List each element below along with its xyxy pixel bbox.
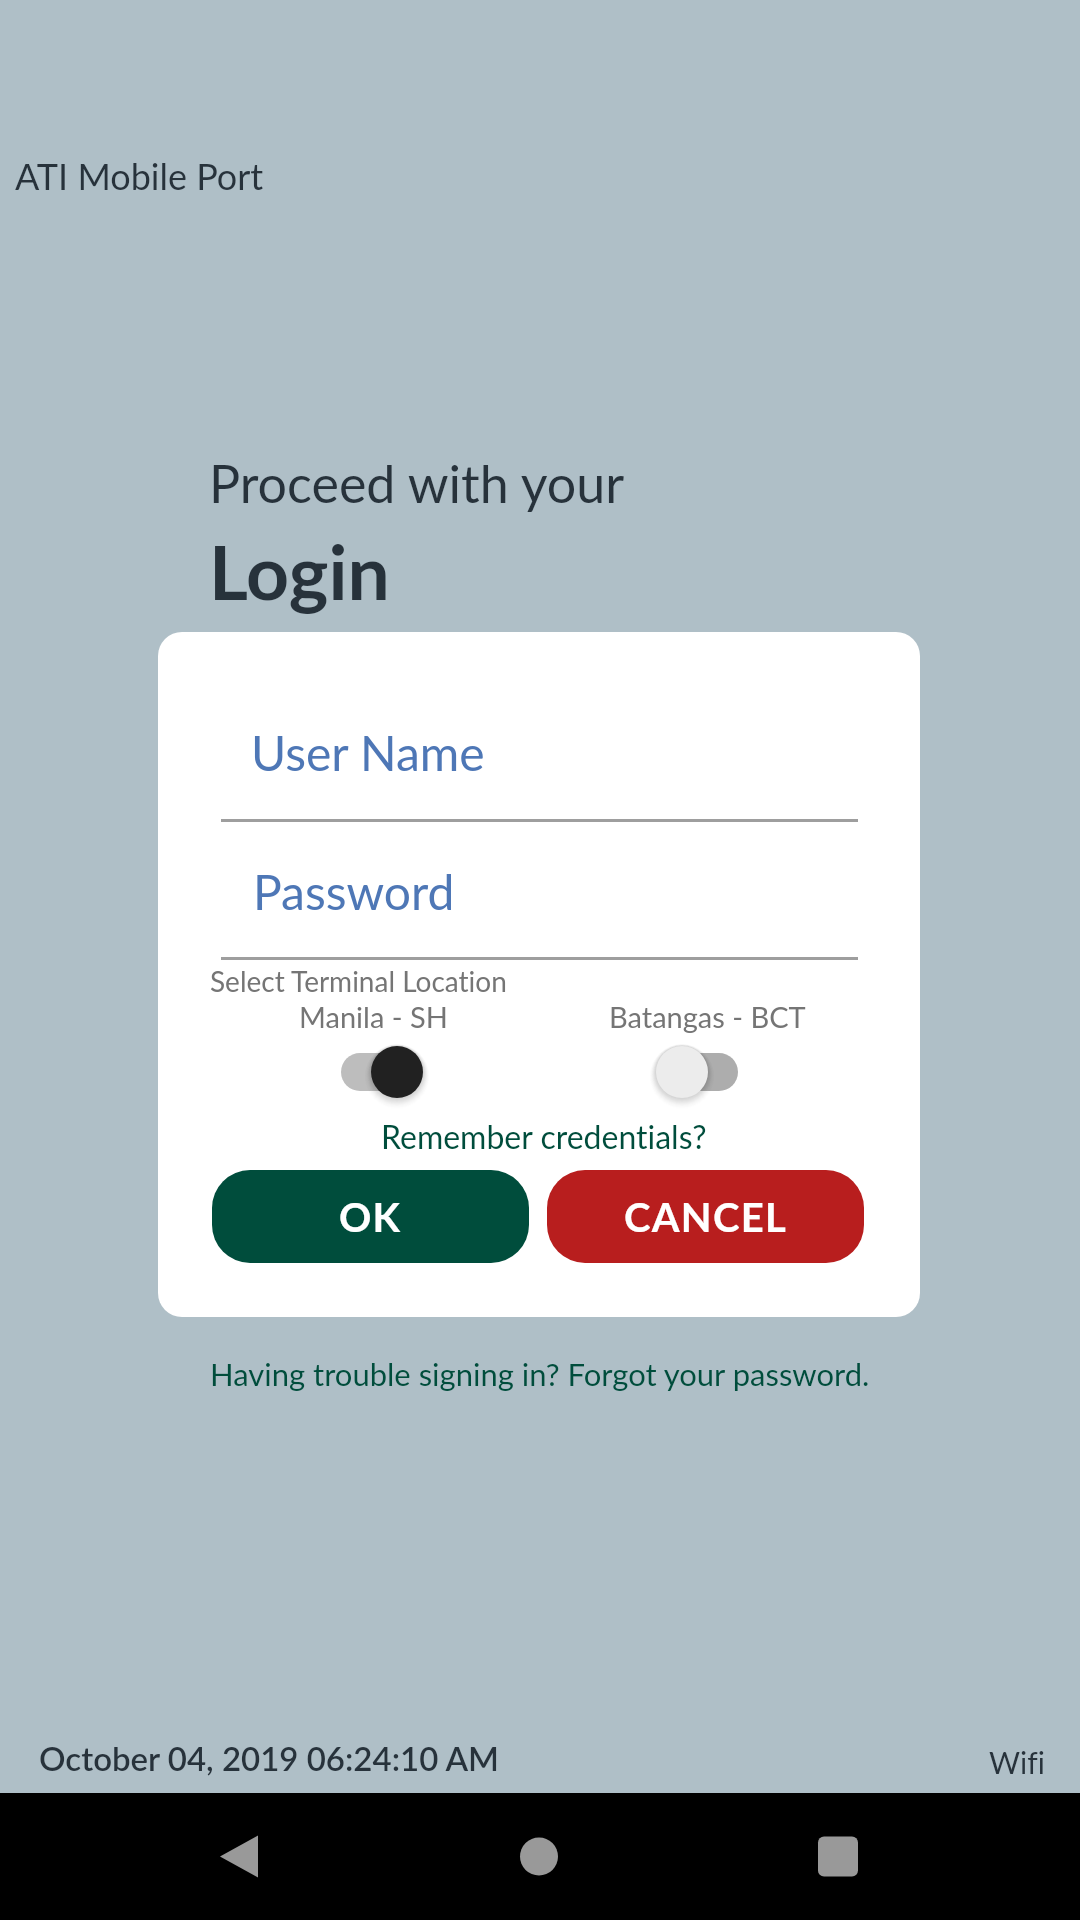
staticText: ATI Mobile Port [15, 154, 264, 197]
button[interactable]: Having trouble signing in? Forgot your p… [0, 1355, 1080, 1392]
staticText: Password [253, 863, 455, 921]
button[interactable]: OK [212, 1170, 529, 1263]
staticText: Having trouble signing in? Forgot your p… [210, 1355, 870, 1392]
button[interactable]: Manila - SH terminal selected [326, 1042, 436, 1102]
button[interactable]: Recent apps [788, 1793, 888, 1920]
button[interactable]: Batangas - BCT terminal [643, 1042, 753, 1102]
staticText: Login [209, 526, 390, 616]
staticText: Proceed with your [209, 452, 625, 514]
button[interactable]: Remember credentials? [163, 1117, 920, 1155]
button[interactable]: CANCEL [547, 1170, 864, 1263]
staticText: OK [339, 1193, 402, 1241]
staticText: User Name [251, 724, 485, 782]
staticText: Wifi [989, 1744, 1045, 1780]
staticText: CANCEL [624, 1193, 788, 1241]
staticText: Batangas - BCT [609, 999, 806, 1034]
staticText: Manila - SH [299, 999, 448, 1034]
staticText: Select Terminal Location [210, 964, 507, 998]
button[interactable]: Home [490, 1793, 590, 1920]
staticText: October 04, 2019 06:24:10 AM [39, 1738, 499, 1778]
button[interactable]: Back [190, 1793, 290, 1920]
staticText: Remember credentials? [381, 1117, 707, 1155]
